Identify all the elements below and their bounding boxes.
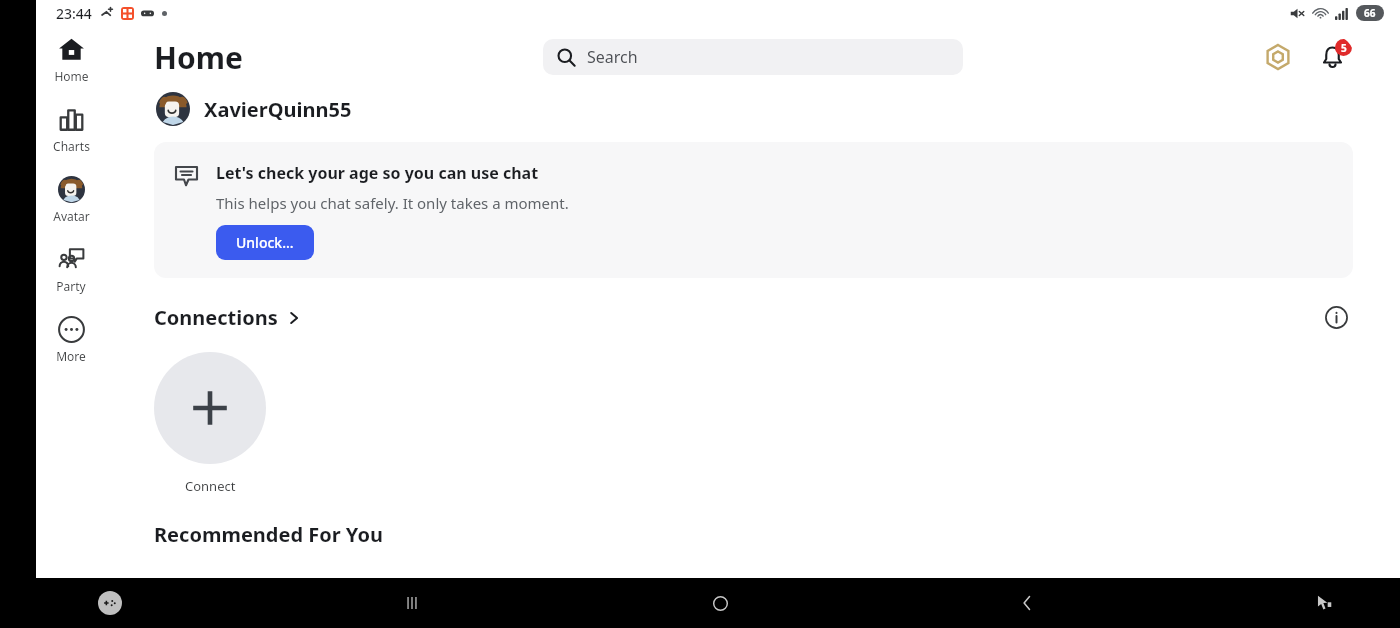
button[interactable]: Hide keyboard xyxy=(1303,583,1343,623)
button[interactable]: Home xyxy=(700,583,740,623)
staticText: Avatar xyxy=(53,208,90,224)
button[interactable]: Connect xyxy=(154,352,266,495)
staticText: Charts xyxy=(53,138,90,154)
staticText: Recommended For You xyxy=(154,521,383,548)
button[interactable]: XavierQuinn55 xyxy=(154,88,354,130)
staticText: Connect xyxy=(185,477,236,495)
button[interactable]: Connections xyxy=(154,302,301,333)
staticText: Party xyxy=(56,278,86,294)
button[interactable]: Notifications xyxy=(1310,35,1354,79)
staticText: This helps you chat safely. It only take… xyxy=(216,193,569,213)
button[interactable]: Charts xyxy=(36,104,106,156)
staticText: Search xyxy=(587,46,638,68)
button[interactable]: More xyxy=(36,314,106,366)
button[interactable]: Game assistant xyxy=(98,591,122,615)
button[interactable]: Party xyxy=(36,244,106,296)
staticText: XavierQuinn55 xyxy=(204,96,352,123)
staticText: 23:44 xyxy=(56,4,92,23)
button[interactable]: Avatar xyxy=(36,174,106,226)
button[interactable]: Robux xyxy=(1258,37,1298,77)
button[interactable]: Unlock... xyxy=(216,225,314,260)
button[interactable]: Let's check your age so you can use chat xyxy=(154,142,1353,278)
staticText: Home xyxy=(54,68,89,84)
staticText: Let's check your age so you can use chat xyxy=(216,162,539,184)
button[interactable]: Search xyxy=(543,39,963,75)
staticText: 5 xyxy=(1341,41,1347,55)
button[interactable]: Recent apps xyxy=(392,583,432,623)
staticText: Home xyxy=(154,37,243,78)
staticText: More xyxy=(56,348,86,364)
staticText: 66 xyxy=(1364,6,1376,20)
staticText: Unlock... xyxy=(236,233,294,252)
button[interactable]: Info xyxy=(1319,300,1353,334)
button[interactable]: Home xyxy=(36,34,106,86)
button[interactable]: Back xyxy=(1007,583,1047,623)
staticText: Connections xyxy=(154,304,278,331)
